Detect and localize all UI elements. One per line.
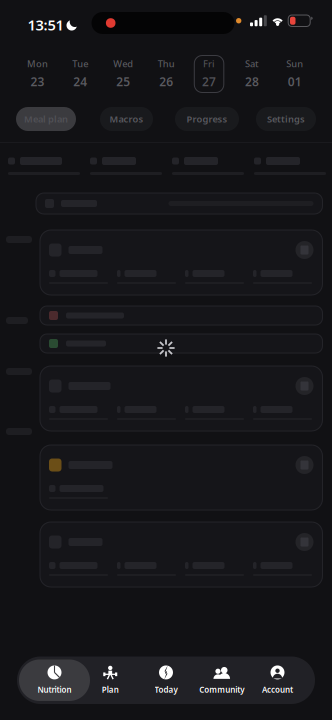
staticText: 26: [159, 74, 173, 90]
staticText: Sun: [286, 57, 303, 70]
button[interactable]: [40, 522, 322, 587]
button[interactable]: [40, 445, 322, 510]
button[interactable]: [40, 366, 322, 431]
button[interactable]: Account: [250, 659, 305, 701]
button[interactable]: Nutrition: [27, 659, 82, 701]
staticText: 28: [245, 74, 259, 90]
button[interactable]: Settings: [256, 107, 316, 131]
staticText: 25: [116, 74, 130, 90]
staticText: 01: [288, 74, 302, 90]
button[interactable]: [40, 306, 322, 325]
staticText: Nutrition: [37, 684, 71, 695]
button[interactable]: Sun: [273, 53, 316, 95]
button[interactable]: Progress: [175, 107, 239, 131]
staticText: Plan: [102, 684, 119, 695]
staticText: Sat: [245, 57, 259, 70]
staticText: 13:51: [27, 15, 63, 34]
staticText: Account: [262, 684, 293, 695]
staticText: Community: [199, 684, 244, 695]
staticText: Tue: [72, 57, 88, 70]
button[interactable]: [40, 230, 322, 295]
staticText: Macros: [109, 113, 143, 125]
button[interactable]: [40, 334, 322, 353]
button[interactable]: Community: [194, 659, 250, 701]
button[interactable]: Today: [138, 659, 194, 701]
staticText: Progress: [186, 113, 227, 125]
staticText: Mon: [27, 57, 48, 70]
staticText: Wed: [113, 57, 133, 70]
button[interactable]: Macros: [100, 107, 153, 131]
staticText: Fri: [203, 57, 215, 70]
button[interactable]: Plan: [82, 659, 138, 701]
button[interactable]: Meal plan: [16, 107, 76, 131]
button[interactable]: Thu: [145, 53, 188, 95]
staticText: Meal plan: [24, 113, 68, 125]
button[interactable]: Wed: [102, 53, 145, 95]
staticText: 27: [202, 74, 216, 90]
button[interactable]: [36, 193, 322, 214]
staticText: Thu: [158, 57, 175, 70]
staticText: Settings: [267, 113, 305, 125]
staticText: Today: [154, 684, 177, 695]
button[interactable]: Mon: [16, 53, 59, 95]
button[interactable]: Fri: [188, 53, 230, 95]
button[interactable]: Sat: [230, 53, 273, 95]
button[interactable]: Tue: [59, 53, 102, 95]
staticText: 23: [30, 74, 44, 90]
staticText: 24: [73, 74, 87, 90]
